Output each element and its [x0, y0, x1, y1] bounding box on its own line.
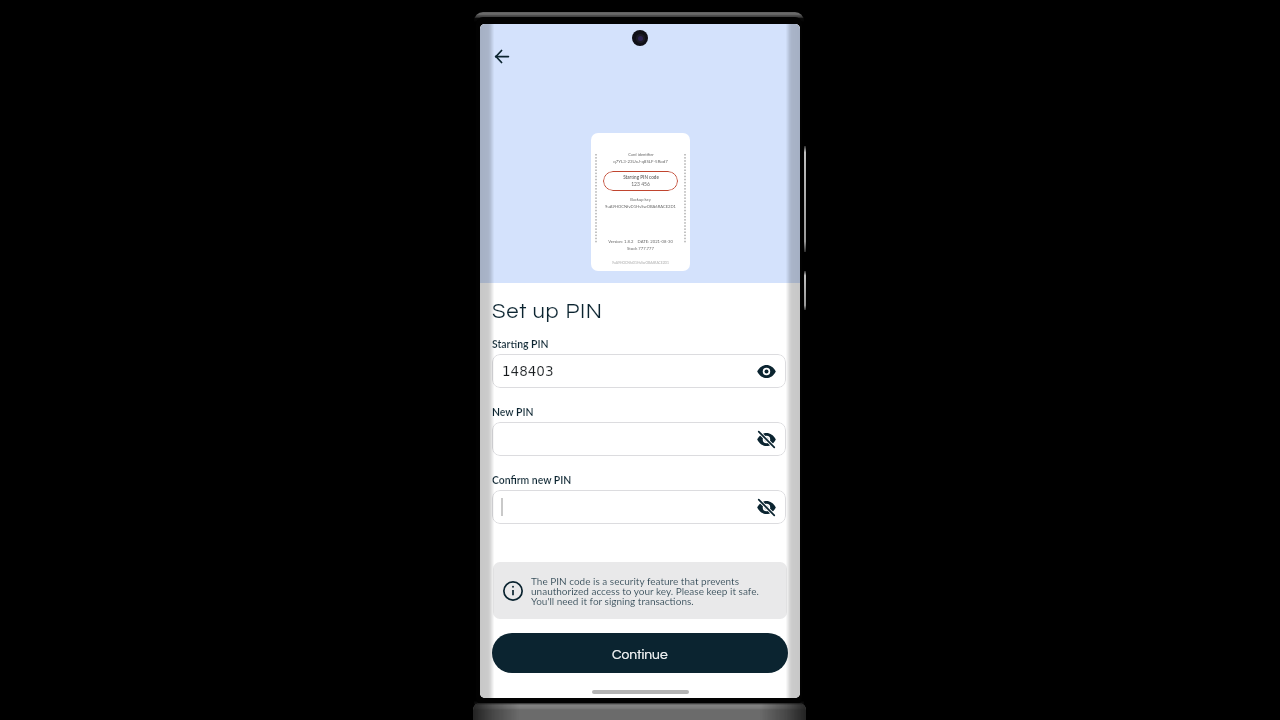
staticText: Stock 777.777: [627, 246, 654, 251]
button[interactable]: Continue: [492, 633, 788, 673]
staticText: Continue: [612, 648, 668, 662]
staticText: Set up PIN: [492, 300, 603, 323]
button[interactable]: Show PIN: [492, 422, 786, 456]
staticText: 148403: [502, 363, 554, 379]
button[interactable]: Show PIN: [754, 495, 778, 519]
button[interactable]: Back: [488, 42, 516, 70]
staticText: Card identifier: [628, 152, 654, 157]
staticText: 9uA9HOCNfvD1HvSwOBA6RACE2D1: [605, 204, 676, 209]
button[interactable]: The PIN code is a security feature that …: [493, 562, 787, 619]
staticText: Starting PIN code: [623, 174, 659, 180]
button[interactable]: 148403: [492, 354, 786, 388]
staticText: Backup key: [630, 197, 651, 202]
staticText: Version: 1.8.2 DATE: 2021-08-30: [608, 239, 673, 244]
staticText: Confirm new PIN: [492, 474, 572, 486]
button[interactable]: Show PIN: [492, 490, 786, 524]
staticText: 9uA9HOCNfvD1HvSwOBA6RACE2D1: [612, 261, 669, 265]
staticText: Starting PIN: [492, 338, 549, 350]
staticText: q7YL3-23UxJ-q8SLF-5Rod7: [613, 159, 668, 164]
button[interactable]: Hide PIN: [754, 359, 778, 383]
staticText: The PIN code is a security feature that …: [531, 575, 762, 608]
button[interactable]: Show PIN: [754, 427, 778, 451]
staticText: New PIN: [492, 406, 534, 418]
staticText: 123 456: [631, 181, 650, 187]
